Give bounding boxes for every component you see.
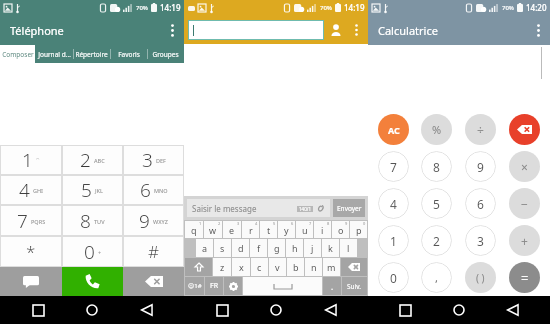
button[interactable]: 8 <box>421 151 452 182</box>
button[interactable] <box>509 114 540 145</box>
staticText: t <box>267 224 271 236</box>
button[interactable]: w <box>204 221 222 238</box>
button[interactable]: Home <box>75 296 109 324</box>
button[interactable]: 8 <box>62 205 123 236</box>
button[interactable]: % <box>421 114 452 145</box>
staticText: ABC <box>94 157 105 164</box>
button[interactable]: ÷ <box>465 114 496 145</box>
button[interactable]: 7 <box>0 205 62 236</box>
staticText: g <box>274 242 280 254</box>
button[interactable]: 9 <box>465 151 496 182</box>
button[interactable]: 3 <box>123 145 184 175</box>
button[interactable]: 5 <box>421 188 452 219</box>
button[interactable]: AC <box>378 114 409 145</box>
button[interactable]: 6 <box>123 175 184 205</box>
button[interactable]: 5 <box>62 175 123 205</box>
button[interactable]: i <box>314 221 331 238</box>
button[interactable]: f <box>250 239 267 257</box>
button[interactable]: d <box>232 239 249 257</box>
button[interactable]: Delete <box>123 267 184 296</box>
button[interactable]: More options <box>160 18 184 42</box>
button[interactable]: o <box>332 221 349 238</box>
button[interactable]: l <box>340 239 357 257</box>
button[interactable]: More options <box>348 22 364 38</box>
button[interactable]: 3 <box>465 225 496 256</box>
button[interactable]: k <box>322 239 339 257</box>
button[interactable]: Home <box>259 296 293 324</box>
button[interactable]: Composer <box>0 45 35 63</box>
button[interactable]: Home <box>442 296 476 324</box>
button[interactable]: 4 <box>378 188 409 219</box>
button[interactable]: s <box>214 239 231 257</box>
button[interactable]: t <box>260 221 277 238</box>
button[interactable]: Contacts <box>324 18 348 42</box>
button[interactable]: , <box>421 262 452 293</box>
button[interactable]: − <box>509 188 540 219</box>
button[interactable]: g <box>268 239 285 257</box>
button[interactable]: c <box>251 258 268 276</box>
button[interactable]: h <box>286 239 303 257</box>
button[interactable]: y <box>278 221 295 238</box>
button[interactable]: Groupes <box>147 45 184 63</box>
staticText: Groupes <box>152 50 179 59</box>
button[interactable]: v <box>269 258 286 276</box>
button[interactable]: 4 <box>0 175 62 205</box>
staticText: − <box>521 196 528 212</box>
button[interactable]: Journal d… <box>35 45 73 63</box>
button[interactable]: Symbols <box>185 277 204 295</box>
button[interactable]: a <box>196 239 213 257</box>
button[interactable]: n <box>305 258 322 276</box>
button[interactable]: x <box>232 258 250 276</box>
button[interactable]: Recents <box>21 296 55 324</box>
button[interactable]: b <box>287 258 304 276</box>
button[interactable]: 7 <box>378 151 409 182</box>
button[interactable]: FR <box>205 277 223 295</box>
button[interactable]: × <box>509 151 540 182</box>
button[interactable]: 0 <box>62 236 123 267</box>
button[interactable]: z <box>213 258 231 276</box>
button[interactable]: Back <box>130 296 164 324</box>
button[interactable]: + <box>509 225 540 256</box>
button[interactable]: = <box>509 262 540 293</box>
button[interactable]: Back <box>496 296 530 324</box>
button[interactable]: Space <box>243 277 322 295</box>
button[interactable]: Settings <box>224 277 242 295</box>
button[interactable]: 2 <box>421 225 452 256</box>
button[interactable]: Recents <box>388 296 422 324</box>
button[interactable]: 2 <box>62 145 123 175</box>
button[interactable]: * <box>0 236 62 267</box>
button[interactable]: q <box>185 221 203 238</box>
button[interactable]: e <box>223 221 241 238</box>
button[interactable]: Backspace <box>341 258 367 276</box>
button[interactable]: 0 <box>378 262 409 293</box>
button[interactable] <box>188 20 324 40</box>
button[interactable]: . <box>323 277 341 295</box>
staticText: c <box>257 261 262 273</box>
staticText: GHI <box>33 187 44 194</box>
button[interactable]: 9 <box>123 205 184 236</box>
staticText: v <box>275 261 280 273</box>
button[interactable]: Shift <box>185 258 212 276</box>
button[interactable]: More options <box>526 18 550 42</box>
button[interactable]: m <box>323 258 340 276</box>
button[interactable]: Répertoire <box>73 45 110 63</box>
button[interactable]: 1 <box>0 145 62 175</box>
staticText: i <box>321 224 324 236</box>
button[interactable]: p <box>350 221 367 238</box>
button[interactable]: # <box>123 236 184 267</box>
button[interactable]: u <box>296 221 313 238</box>
button[interactable]: Back <box>314 296 348 324</box>
button[interactable]: j <box>304 239 321 257</box>
button[interactable]: 1 <box>378 225 409 256</box>
button[interactable]: 6 <box>465 188 496 219</box>
button[interactable]: Saisir le message <box>187 199 330 217</box>
button[interactable]: ( ) <box>465 262 496 293</box>
button[interactable]: Recents <box>205 296 239 324</box>
button[interactable]: Suiv. <box>342 277 367 295</box>
button[interactable]: Call <box>62 267 123 296</box>
button[interactable]: Envoyer <box>333 199 365 217</box>
button[interactable]: Message <box>0 267 62 296</box>
button[interactable]: r <box>242 221 259 238</box>
button[interactable]: Favoris <box>110 45 147 63</box>
staticText: ÷ <box>477 122 484 138</box>
